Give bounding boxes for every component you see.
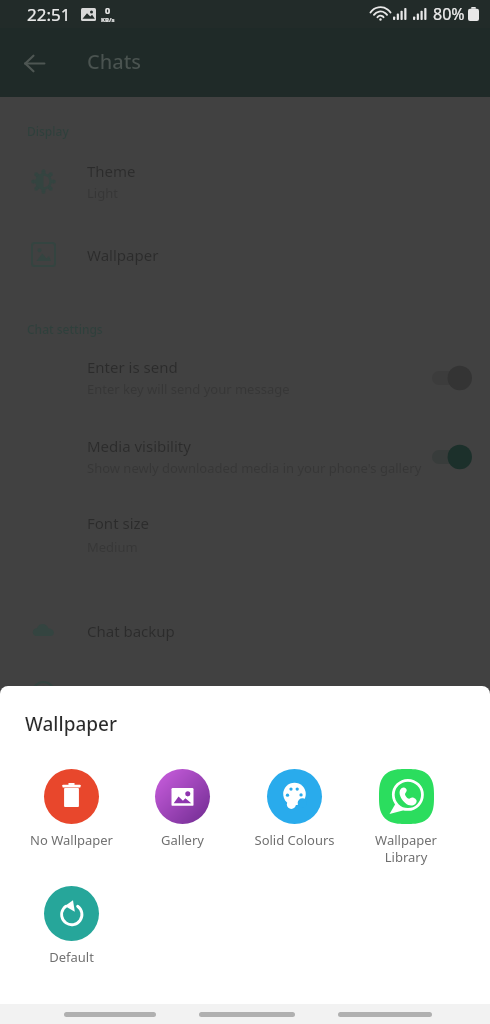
- staticText: Font size: [87, 513, 150, 533]
- staticText: Chat settings: [27, 321, 103, 337]
- staticText: Display: [27, 123, 69, 139]
- button[interactable]: Chat backup: [0, 618, 490, 643]
- button[interactable]: Recents: [338, 1004, 432, 1024]
- staticText: Enter key will send your message: [87, 380, 290, 398]
- staticText: Light: [87, 184, 118, 202]
- staticText: Show newly downloaded media in your phon…: [87, 459, 422, 477]
- staticText: Medium: [87, 538, 138, 556]
- staticText: Solid Colours: [254, 831, 335, 849]
- staticText: Default: [49, 948, 94, 966]
- staticText: Wallpaper: [25, 711, 117, 737]
- button[interactable]: Home: [199, 1004, 295, 1024]
- staticText: Chat backup: [87, 621, 175, 641]
- staticText: Wallpaper Library: [375, 831, 437, 866]
- staticText: Gallery: [161, 831, 204, 849]
- button[interactable]: Solid Colours: [238, 769, 350, 849]
- button[interactable]: History: [0, 680, 490, 705]
- staticText: KB/s: [101, 16, 115, 24]
- staticText: No Wallpaper: [30, 831, 113, 849]
- button[interactable]: Wallpaper Library: [350, 769, 462, 866]
- button[interactable]: No Wallpaper: [16, 769, 127, 849]
- button[interactable]: Gallery: [127, 769, 238, 849]
- button[interactable]: Media visibility: [0, 436, 490, 477]
- button[interactable]: Enter is send: [0, 357, 490, 398]
- staticText: Chats: [87, 48, 142, 75]
- staticText: 80%: [433, 3, 465, 25]
- button[interactable]: Default: [16, 886, 127, 966]
- button[interactable]: Wallpaper: [0, 242, 490, 267]
- staticText: History: [87, 683, 138, 703]
- staticText: 0: [105, 4, 111, 16]
- staticText: Enter is send: [87, 357, 178, 377]
- staticText: 22:51: [27, 3, 71, 26]
- staticText: Theme: [87, 161, 136, 181]
- button[interactable]: Back: [64, 1004, 156, 1024]
- staticText: Media visibility: [87, 436, 191, 456]
- button[interactable]: Back: [10, 39, 58, 87]
- staticText: Wallpaper: [87, 245, 159, 265]
